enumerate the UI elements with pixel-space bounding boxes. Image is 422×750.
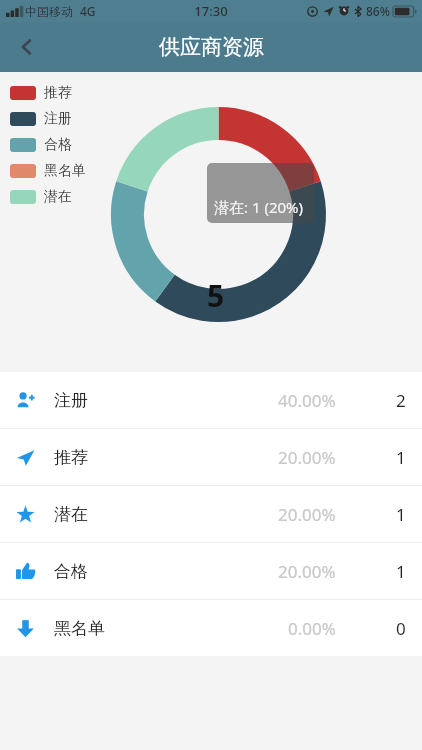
staticText: 合格 xyxy=(54,561,88,582)
button[interactable]: 潜在 xyxy=(0,486,422,542)
button[interactable]: 潜在 xyxy=(10,184,72,210)
staticText: 20.00% xyxy=(278,503,336,526)
button[interactable]: 注册 xyxy=(10,106,72,132)
staticText: 注册 xyxy=(54,390,88,411)
staticText: 0.00% xyxy=(288,617,336,640)
staticText: 86% xyxy=(366,3,390,19)
staticText: 黑名单 xyxy=(54,618,105,639)
staticText: 推荐 xyxy=(44,84,72,102)
staticText: 合格 xyxy=(44,136,72,154)
button[interactable]: 推荐 xyxy=(0,429,422,485)
staticText: 1 xyxy=(396,446,406,469)
button[interactable]: Back xyxy=(4,24,50,70)
staticText: 40.00% xyxy=(278,389,336,412)
staticText: 2 xyxy=(396,389,406,412)
button[interactable]: 合格 xyxy=(10,132,72,158)
button[interactable]: 合格 xyxy=(0,543,422,599)
staticText: 潜在 xyxy=(44,188,72,206)
staticText: 潜在: 1 (20%) xyxy=(214,197,304,217)
staticText: 17:30 xyxy=(194,2,228,20)
staticText: 1 xyxy=(396,503,406,526)
button[interactable]: 推荐 xyxy=(10,80,72,106)
button[interactable]: 注册 xyxy=(0,372,422,428)
staticText: 1 xyxy=(396,560,406,583)
button[interactable]: 黑名单 xyxy=(0,600,422,656)
staticText: 黑名单 xyxy=(44,162,86,180)
staticText: 20.00% xyxy=(278,560,336,583)
staticText: 潜在 xyxy=(54,504,88,525)
staticText: 中国移动 xyxy=(25,4,73,19)
staticText: 0 xyxy=(396,617,406,640)
staticText: 5 xyxy=(207,275,225,316)
staticText: 20.00% xyxy=(278,446,336,469)
staticText: 4G xyxy=(80,3,96,19)
button[interactable]: 黑名单 xyxy=(10,158,86,184)
staticText: 注册 xyxy=(44,110,72,128)
staticText: 推荐 xyxy=(54,447,88,468)
staticText: 供应商资源 xyxy=(159,34,264,60)
